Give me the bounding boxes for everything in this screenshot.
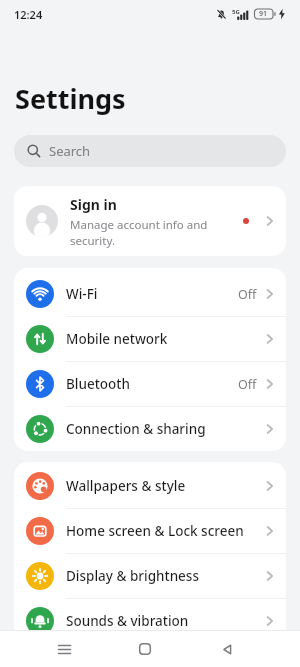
staticText: Home screen & Lock screen [66,522,244,540]
staticText: 5G [232,8,240,16]
staticText: Off [238,286,257,303]
staticText: Settings [15,80,126,117]
staticText: Search [49,142,91,160]
button[interactable] [127,631,163,667]
staticText: Sign in [70,195,117,214]
staticText: Manage account info and security. [70,217,208,248]
button[interactable]: Sign in [14,186,286,256]
button[interactable]: Wallpapers & style [14,464,286,508]
button[interactable]: Mobile network [14,317,286,361]
staticText: Sounds & vibration [66,612,189,630]
button[interactable]: Sounds & vibration [14,599,286,643]
staticText: Wallpapers & style [66,477,186,495]
button[interactable]: Bluetooth [14,362,286,406]
staticText: 12:24 [14,7,43,22]
button[interactable] [46,631,82,667]
staticText: Bluetooth [66,375,130,393]
button[interactable]: Home screen & Lock screen [14,509,286,553]
staticText: Connection & sharing [66,420,206,438]
button[interactable]: Search [14,135,286,167]
button[interactable]: Wi-Fi [14,272,286,316]
staticText: Display & brightness [66,567,199,585]
staticText: Mobile network [66,330,168,348]
staticText: Off [238,376,257,393]
button[interactable]: Connection & sharing [14,407,286,451]
staticText: 91 [259,9,268,19]
button[interactable]: Display & brightness [14,554,286,598]
staticText: Wi-Fi [66,285,98,303]
button[interactable] [209,631,245,667]
